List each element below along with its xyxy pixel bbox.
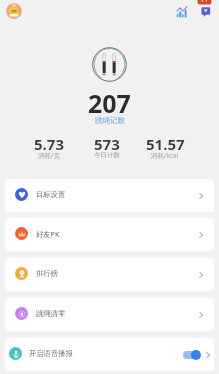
- button[interactable]: Statistics: [176, 6, 188, 18]
- staticText: 消耗/kcal: [151, 151, 179, 160]
- staticText: 排行榜: [36, 269, 58, 278]
- button[interactable]: 好友PK: [5, 218, 214, 251]
- staticText: 开启语音播报: [29, 349, 73, 358]
- button[interactable]: 开启语音播报: [5, 338, 214, 371]
- staticText: 消耗/克: [38, 151, 60, 160]
- button[interactable]: Profile: [6, 3, 22, 19]
- button[interactable]: 目标设置: [5, 179, 214, 212]
- staticText: 51.57: [146, 134, 185, 154]
- button[interactable]: Messages: [197, 0, 212, 18]
- staticText: 目标设置: [36, 190, 66, 199]
- staticText: 好友PK: [36, 229, 60, 239]
- staticText: 跳绳清零: [36, 309, 66, 318]
- staticText: 跳绳记数: [95, 116, 125, 125]
- button[interactable]: 跳绳清零: [5, 298, 214, 331]
- staticText: 573: [94, 134, 120, 154]
- button[interactable]: Toggle voice broadcast: [183, 349, 201, 360]
- staticText: 今日计数: [94, 151, 120, 159]
- staticText: 207: [88, 86, 131, 120]
- staticText: 5.73: [34, 134, 64, 154]
- button[interactable]: 排行榜: [5, 258, 214, 291]
